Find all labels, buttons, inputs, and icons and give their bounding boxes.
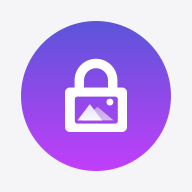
button[interactable]: Locked photos	[0, 0, 192, 192]
